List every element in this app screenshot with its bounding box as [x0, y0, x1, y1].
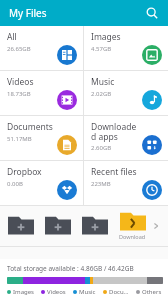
staticText: Others [142, 288, 162, 296]
staticText: All [7, 31, 17, 43]
staticText: Music [91, 76, 115, 88]
staticText: Images [13, 288, 34, 296]
staticText: Recent files [91, 166, 137, 178]
staticText: Documents [7, 121, 53, 133]
button[interactable]: All [0, 26, 83, 70]
staticText: 26.65GB [7, 45, 31, 53]
staticText: Total storage available : 4.86GB / 46.42… [7, 264, 134, 273]
button[interactable]: Videos [0, 71, 83, 115]
staticText: My Files [9, 6, 47, 20]
button[interactable]: Recent files [84, 161, 168, 205]
staticText: 223MB [91, 180, 111, 188]
staticText: Music [79, 288, 96, 296]
staticText: Videos [47, 288, 66, 296]
staticText: Dropbox [7, 166, 42, 178]
staticText: 2.02GB [91, 90, 112, 98]
button[interactable]: New folder [45, 216, 71, 236]
button[interactable]: Downloaded apps [84, 116, 168, 160]
button[interactable]: New folder [8, 216, 34, 236]
staticText: Downloaded apps [91, 121, 139, 142]
staticText: 2.60GB [91, 144, 112, 152]
staticText: Docu... [109, 288, 129, 296]
staticText: 51.17MB [7, 135, 32, 143]
button[interactable]: Music [84, 71, 168, 115]
staticText: 18.73GB [7, 90, 31, 98]
staticText: Videos [7, 76, 34, 88]
button[interactable]: New folder [82, 216, 108, 236]
button[interactable]: Download [120, 212, 146, 232]
staticText: Download [119, 233, 146, 240]
staticText: Images [91, 31, 121, 43]
staticText: 4.57GB [91, 45, 112, 53]
staticText: 0.00B [7, 180, 23, 188]
button[interactable]: Documents [0, 116, 83, 160]
button[interactable]: Images [84, 26, 168, 70]
button[interactable]: Search [142, 3, 162, 23]
button[interactable]: Dropbox [0, 161, 83, 205]
button[interactable]: Total storage available : 4.86GB / 46.42… [0, 259, 168, 300]
